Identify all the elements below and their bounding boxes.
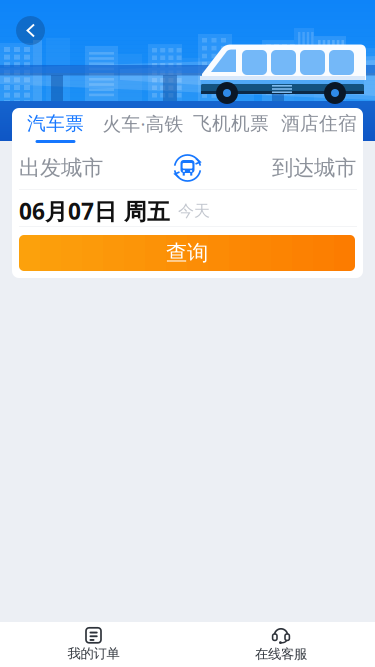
staticText: 到达城市 bbox=[272, 155, 356, 181]
staticText: 汽车票 bbox=[27, 112, 84, 135]
button[interactable]: 酒店住宿 bbox=[275, 114, 363, 143]
button[interactable]: 06月07日 周五 bbox=[19, 196, 357, 226]
staticText: 出发城市 bbox=[19, 155, 103, 181]
staticText: 06月07日 周五 bbox=[19, 196, 170, 226]
button[interactable]: 飞机机票 bbox=[187, 114, 275, 143]
button[interactable]: 出发城市 bbox=[12, 148, 159, 188]
button[interactable]: 在线客服 bbox=[187, 622, 375, 667]
staticText: 火车·高铁 bbox=[102, 111, 183, 136]
button[interactable]: 到达城市 bbox=[216, 148, 363, 188]
staticText: 我的订单 bbox=[67, 645, 119, 662]
button[interactable]: 汽车票 bbox=[12, 114, 99, 143]
staticText: 酒店住宿 bbox=[281, 112, 357, 135]
button[interactable]: 火车·高铁 bbox=[99, 114, 187, 143]
button[interactable]: Swap cities bbox=[167, 148, 207, 188]
button[interactable]: 我的订单 bbox=[0, 622, 187, 667]
button[interactable]: 查询 bbox=[19, 235, 355, 271]
staticText: 查询 bbox=[166, 240, 208, 266]
button[interactable]: Back bbox=[16, 16, 45, 45]
staticText: 今天 bbox=[178, 201, 210, 221]
staticText: 飞机机票 bbox=[193, 112, 269, 135]
staticText: 在线客服 bbox=[255, 646, 307, 662]
